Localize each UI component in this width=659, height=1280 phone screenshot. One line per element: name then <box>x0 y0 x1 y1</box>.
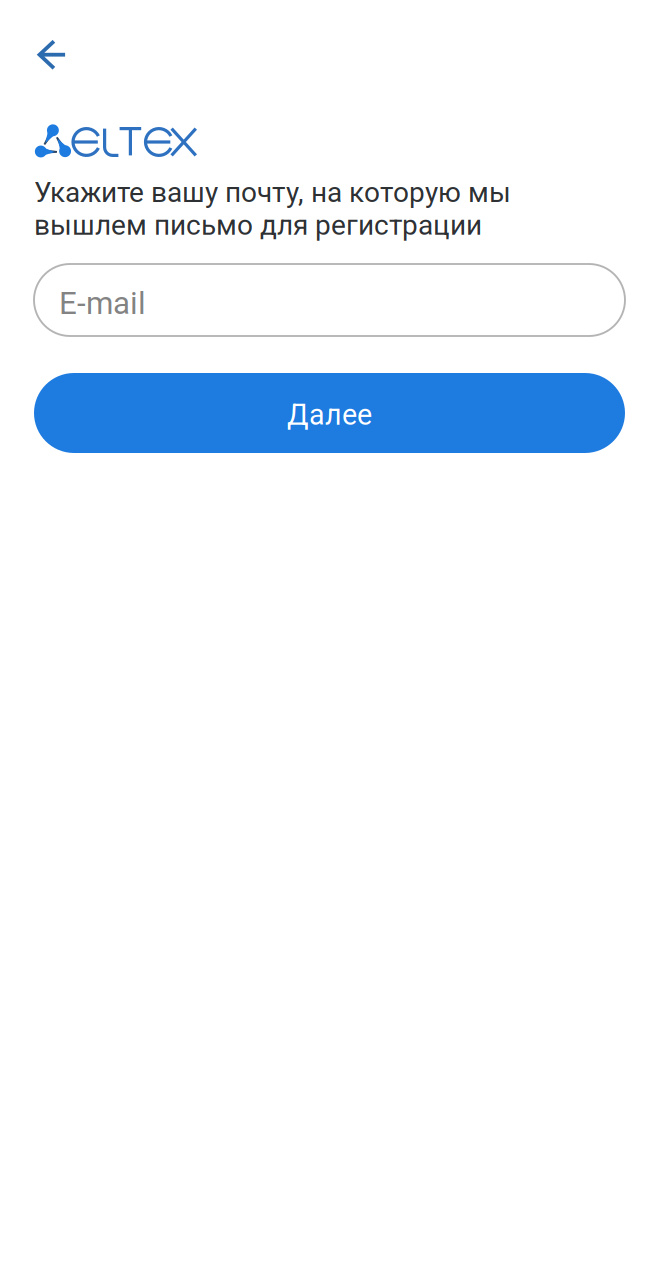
button[interactable]: E-mail <box>34 264 625 336</box>
staticText: Далее <box>287 398 372 432</box>
button[interactable]: Back <box>15 17 91 93</box>
button[interactable]: Далее <box>34 373 625 453</box>
staticText: E-mail <box>59 285 146 322</box>
staticText: Укажите вашу почту, на которую мы вышлем… <box>34 176 511 242</box>
